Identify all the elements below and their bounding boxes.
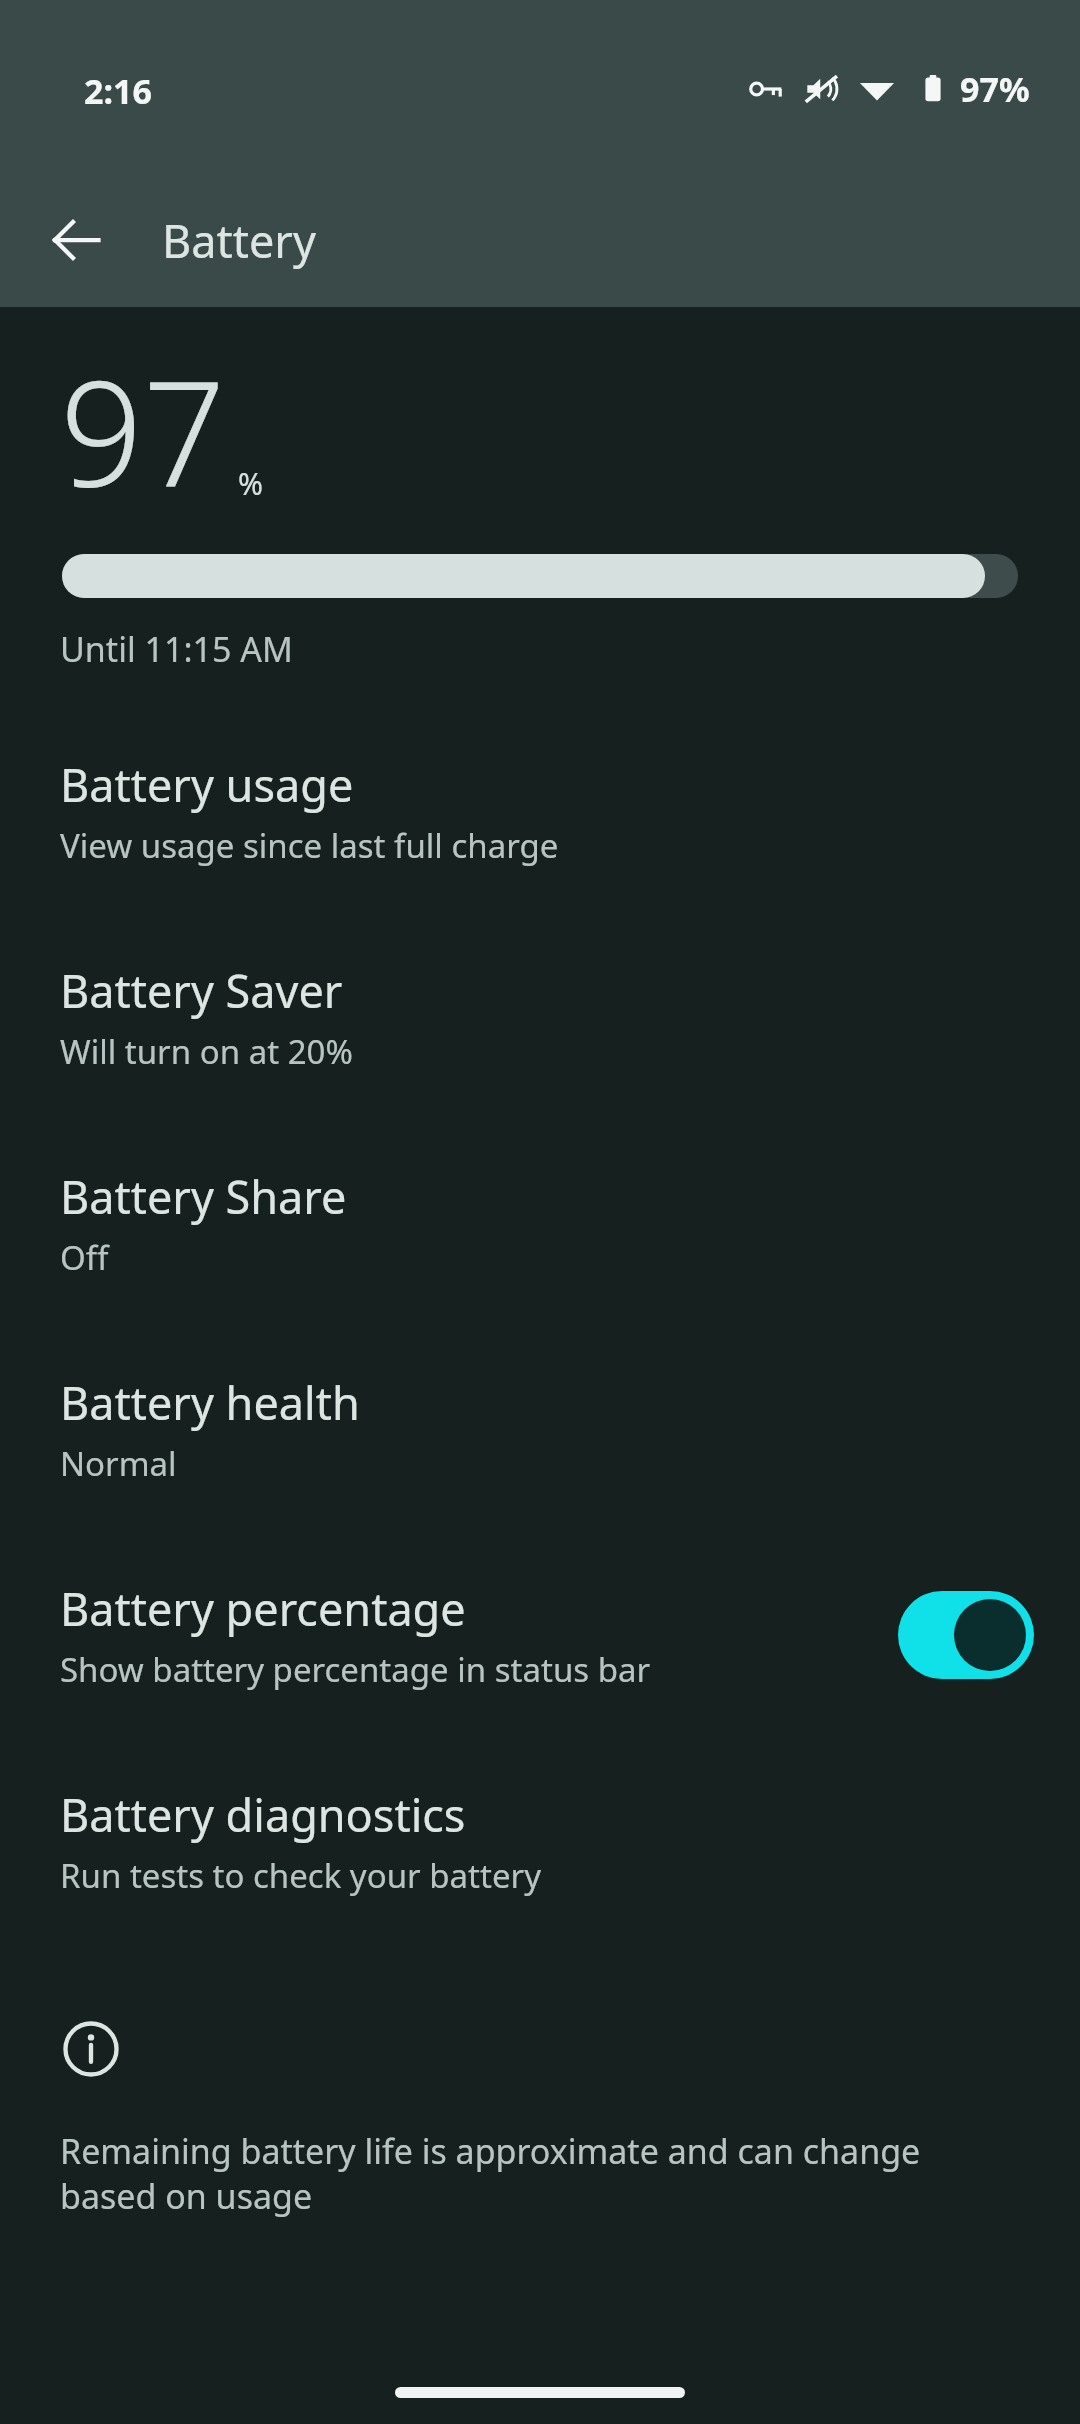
button[interactable]: Back [32, 196, 120, 284]
button[interactable]: Battery diagnostics [0, 1762, 1080, 1920]
staticText: 97 [60, 331, 226, 528]
button[interactable]: Battery Share [0, 1144, 1080, 1302]
staticText: Battery percentage [60, 1578, 466, 1639]
staticText: Battery usage [60, 754, 354, 815]
staticText: Show battery percentage in status bar [60, 1647, 651, 1692]
button[interactable]: Battery percentage [0, 1556, 1080, 1714]
button[interactable]: Battery health [0, 1350, 1080, 1508]
staticText: Off [60, 1235, 109, 1280]
staticText: 2:16 [84, 68, 152, 114]
staticText: Battery health [60, 1372, 360, 1433]
staticText: 97% [960, 66, 1030, 112]
button[interactable]: Battery Saver [0, 938, 1080, 1096]
staticText: Battery diagnostics [60, 1784, 466, 1845]
staticText: Will turn on at 20% [60, 1029, 353, 1074]
staticText: Run tests to check your battery [60, 1853, 541, 1898]
staticText: Remaining battery life is approximate an… [60, 2128, 1020, 2218]
staticText: Battery Saver [60, 960, 343, 1021]
staticText: Battery Share [60, 1166, 347, 1227]
staticText: Battery [162, 210, 316, 271]
button[interactable]: Battery percentage toggle [898, 1591, 1034, 1679]
staticText: Until 11:15 AM [60, 626, 293, 672]
staticText: View usage since last full charge [60, 823, 559, 868]
button[interactable]: Battery usage [0, 732, 1080, 890]
staticText: % [238, 463, 263, 504]
staticText: Normal [60, 1441, 177, 1486]
